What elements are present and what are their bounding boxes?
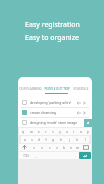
staticText: Easy registration xyxy=(25,20,80,30)
button[interactable]: l xyxy=(81,136,89,143)
staticText: ?123 xyxy=(23,154,29,158)
button[interactable]: Enter xyxy=(79,152,91,159)
staticText: n xyxy=(70,146,72,150)
staticText: g xyxy=(52,138,54,142)
staticText: s xyxy=(31,138,33,142)
staticText: m xyxy=(76,146,79,150)
staticText: i xyxy=(73,130,74,134)
button[interactable]: v xyxy=(53,144,60,151)
staticText: Easy to organize xyxy=(25,33,79,43)
staticText: designing 'mode' store image xyxy=(30,120,84,125)
button[interactable]: create cleansing xyxy=(18,108,92,117)
button[interactable]: Backspace xyxy=(81,144,91,151)
button[interactable]: m xyxy=(74,144,81,151)
button[interactable]: developing 'parking arlire' xyxy=(18,98,92,107)
staticText: o xyxy=(80,130,82,134)
button[interactable]: More options xyxy=(76,100,88,106)
staticText: r xyxy=(45,130,47,134)
button[interactable]: t xyxy=(49,128,56,135)
button[interactable]: x xyxy=(38,144,46,151)
staticText: b xyxy=(63,146,65,150)
staticText: x xyxy=(41,146,43,150)
button[interactable]: w xyxy=(27,128,35,135)
staticText: v xyxy=(56,146,58,150)
staticText: w xyxy=(30,130,33,134)
button[interactable]: y xyxy=(56,128,63,135)
button[interactable]: e xyxy=(35,128,42,135)
button[interactable]: r xyxy=(42,128,49,135)
button[interactable]: f xyxy=(42,136,49,143)
button[interactable]: PEOPLE OUT TRIP xyxy=(43,87,70,96)
button[interactable]: . xyxy=(72,152,79,159)
button[interactable]: OUR PLANNING xyxy=(18,87,43,96)
staticText: SCHEDULE xyxy=(73,87,89,91)
staticText: OUR PLANNING xyxy=(19,87,42,91)
button[interactable]: SCHEDULE xyxy=(70,87,92,96)
button[interactable]: j xyxy=(65,136,73,143)
staticText: t xyxy=(52,130,54,134)
staticText: z xyxy=(33,146,35,150)
staticText: create cleansing xyxy=(30,110,76,115)
staticText: developing 'parking arlire' xyxy=(30,100,76,105)
button[interactable]: d xyxy=(35,136,42,143)
staticText: k xyxy=(76,138,78,142)
staticText: u xyxy=(66,130,68,134)
button[interactable]: b xyxy=(60,144,67,151)
button[interactable]: k xyxy=(73,136,81,143)
staticText: f xyxy=(45,138,47,142)
staticText: q xyxy=(22,130,24,134)
staticText: , xyxy=(35,154,36,158)
button[interactable]: s xyxy=(28,136,35,143)
staticText: . xyxy=(75,154,76,158)
button[interactable]: a xyxy=(21,136,28,143)
button[interactable]: ?123 xyxy=(19,152,32,159)
staticText: y xyxy=(59,130,61,134)
button[interactable]: i xyxy=(70,128,77,135)
button[interactable]: o xyxy=(77,128,84,135)
button[interactable] xyxy=(22,120,27,125)
staticText: d xyxy=(38,138,40,142)
staticText: p xyxy=(87,130,89,134)
button[interactable]: c xyxy=(46,144,53,151)
button[interactable]: h xyxy=(57,136,65,143)
button[interactable]: p xyxy=(84,128,91,135)
staticText: j xyxy=(69,138,70,142)
staticText: l xyxy=(85,138,86,142)
button[interactable]: u xyxy=(63,128,70,135)
staticText: a xyxy=(24,138,26,142)
staticText: e xyxy=(38,130,40,134)
staticText: PEOPLE OUT TRIP xyxy=(44,87,70,91)
staticText: c xyxy=(49,146,51,150)
button[interactable]: z xyxy=(30,144,38,151)
button[interactable]: n xyxy=(67,144,74,151)
button[interactable]: Shift xyxy=(19,144,30,151)
button[interactable]: g xyxy=(49,136,57,143)
button[interactable]: More options xyxy=(76,110,88,116)
button[interactable]: , xyxy=(32,152,39,159)
staticText: h xyxy=(60,138,62,142)
button[interactable]: q xyxy=(19,128,27,135)
button[interactable]: Send xyxy=(84,119,92,127)
